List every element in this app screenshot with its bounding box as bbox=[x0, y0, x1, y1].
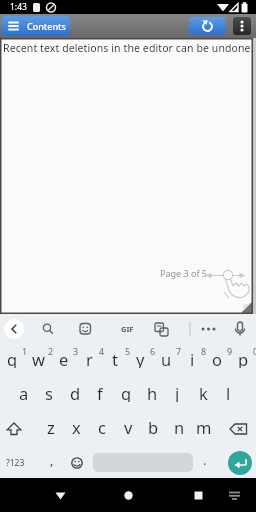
staticText: 7 bbox=[176, 345, 182, 356]
staticText: ?123 bbox=[6, 457, 25, 469]
staticText: k bbox=[199, 382, 208, 402]
staticText: 8 bbox=[201, 345, 207, 356]
staticText: i bbox=[190, 348, 195, 368]
staticText: 1:43 bbox=[10, 1, 27, 13]
staticText: Page 3 of 5 bbox=[160, 267, 207, 279]
staticText: z bbox=[47, 416, 55, 436]
staticText: h bbox=[147, 382, 158, 402]
button[interactable] bbox=[222, 484, 246, 508]
staticText: Recent text deletions in the editor can … bbox=[3, 41, 254, 55]
staticText: l bbox=[226, 382, 231, 402]
staticText: x bbox=[72, 416, 81, 436]
staticText: 9 bbox=[227, 345, 233, 356]
staticText: . bbox=[203, 451, 207, 469]
staticText: s bbox=[45, 382, 53, 402]
staticText: g bbox=[121, 382, 132, 402]
staticText: GIF bbox=[121, 324, 134, 334]
staticText: 3 bbox=[73, 345, 79, 356]
button[interactable]: Contents bbox=[2, 16, 70, 36]
staticText: 4 bbox=[99, 345, 105, 356]
staticText: 0 bbox=[253, 345, 256, 356]
staticText: , bbox=[50, 451, 54, 469]
staticText: 5 bbox=[125, 345, 131, 356]
staticText: 2 bbox=[48, 345, 54, 356]
staticText: t bbox=[112, 348, 118, 368]
staticText: w bbox=[32, 348, 45, 368]
staticText: y bbox=[136, 348, 145, 368]
button[interactable]: GIF bbox=[0, 314, 256, 344]
staticText: 1 bbox=[22, 345, 28, 356]
staticText: f bbox=[97, 382, 103, 402]
button[interactable] bbox=[228, 451, 252, 475]
button[interactable] bbox=[178, 478, 218, 512]
staticText: e bbox=[59, 348, 69, 368]
staticText: a bbox=[19, 382, 29, 402]
staticText: c bbox=[98, 416, 106, 436]
staticText: p bbox=[238, 348, 249, 368]
button[interactable] bbox=[233, 17, 251, 35]
staticText: j bbox=[175, 382, 180, 402]
button[interactable] bbox=[108, 478, 148, 512]
staticText: b bbox=[148, 416, 159, 436]
staticText: u bbox=[161, 348, 172, 368]
staticText: Contents bbox=[27, 20, 66, 32]
staticText: r bbox=[86, 348, 93, 368]
staticText: o bbox=[212, 348, 222, 368]
staticText: n bbox=[174, 416, 185, 436]
staticText: 6 bbox=[150, 345, 156, 356]
staticText: q bbox=[7, 348, 18, 368]
staticText: m bbox=[196, 416, 212, 436]
button[interactable] bbox=[40, 478, 80, 512]
button[interactable] bbox=[189, 17, 226, 35]
staticText: v bbox=[124, 416, 133, 436]
staticText: d bbox=[70, 382, 81, 402]
